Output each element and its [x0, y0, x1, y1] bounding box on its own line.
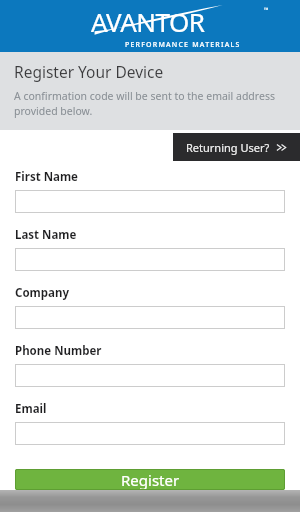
button[interactable]: Email — [15, 422, 285, 445]
button[interactable]: Company — [15, 306, 285, 329]
staticText: PERFORMANCE MATERIALS — [125, 40, 269, 48]
button[interactable]: First Name — [15, 190, 285, 213]
button[interactable]: Returning User? — [173, 133, 300, 161]
staticText: Register — [121, 470, 180, 490]
other: Returning user sign in — [276, 142, 287, 153]
staticText: First Name — [15, 169, 78, 185]
button[interactable]: Phone Number — [15, 364, 285, 387]
staticText: Register Your Device — [14, 61, 164, 82]
staticText: Last Name — [15, 227, 77, 243]
staticText: A confirmation code will be sent to the … — [14, 89, 286, 118]
staticText: Email — [15, 401, 47, 417]
staticText: Company — [15, 285, 69, 301]
button[interactable]: Register — [15, 469, 285, 490]
staticText: Phone Number — [15, 343, 102, 359]
staticText: ™ — [264, 6, 269, 14]
staticText: AVANTOR — [91, 4, 205, 39]
staticText: Returning User? — [186, 140, 270, 155]
button[interactable]: Last Name — [15, 248, 285, 271]
